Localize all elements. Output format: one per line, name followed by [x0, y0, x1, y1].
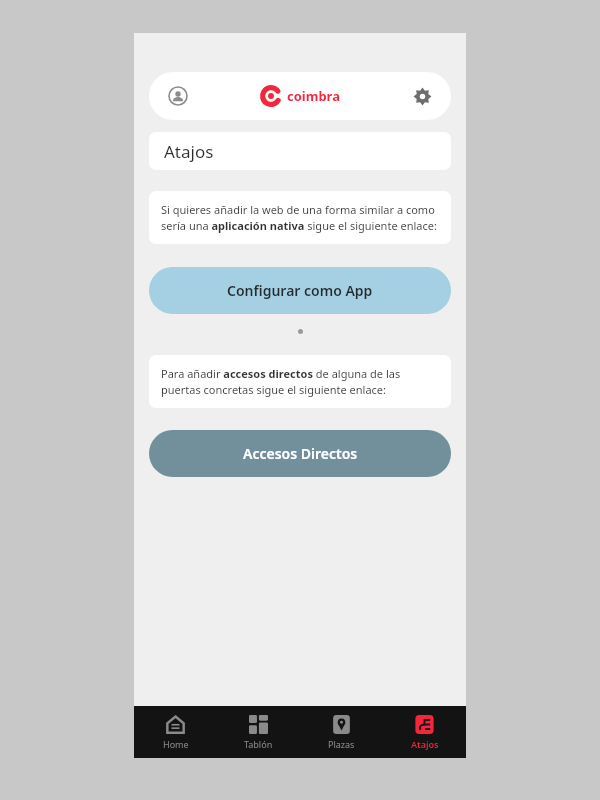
button[interactable]: Accesos Directos — [149, 430, 451, 477]
staticText: Si quieres añadir la web de una forma si… — [161, 202, 439, 233]
button[interactable]: Home — [134, 706, 217, 758]
button[interactable]: Tablón — [217, 706, 300, 758]
button[interactable]: Account — [161, 79, 195, 113]
staticText: Para añadir accesos directos de alguna d… — [161, 366, 439, 397]
button[interactable]: Atajos — [149, 132, 451, 170]
staticText: Home — [163, 738, 189, 750]
staticText: Tablón — [244, 738, 273, 750]
staticText: Plazas — [328, 738, 355, 750]
button[interactable]: Atajos — [383, 706, 466, 758]
staticText: Atajos — [411, 738, 439, 750]
staticText: Configurar como App — [227, 281, 373, 300]
button[interactable]: Plazas — [300, 706, 383, 758]
button[interactable]: Configurar como App — [149, 267, 451, 314]
staticText: Accesos Directos — [243, 444, 358, 463]
staticText: coimbra — [287, 87, 340, 105]
staticText: Atajos — [164, 140, 214, 163]
button[interactable]: Settings — [405, 79, 439, 113]
